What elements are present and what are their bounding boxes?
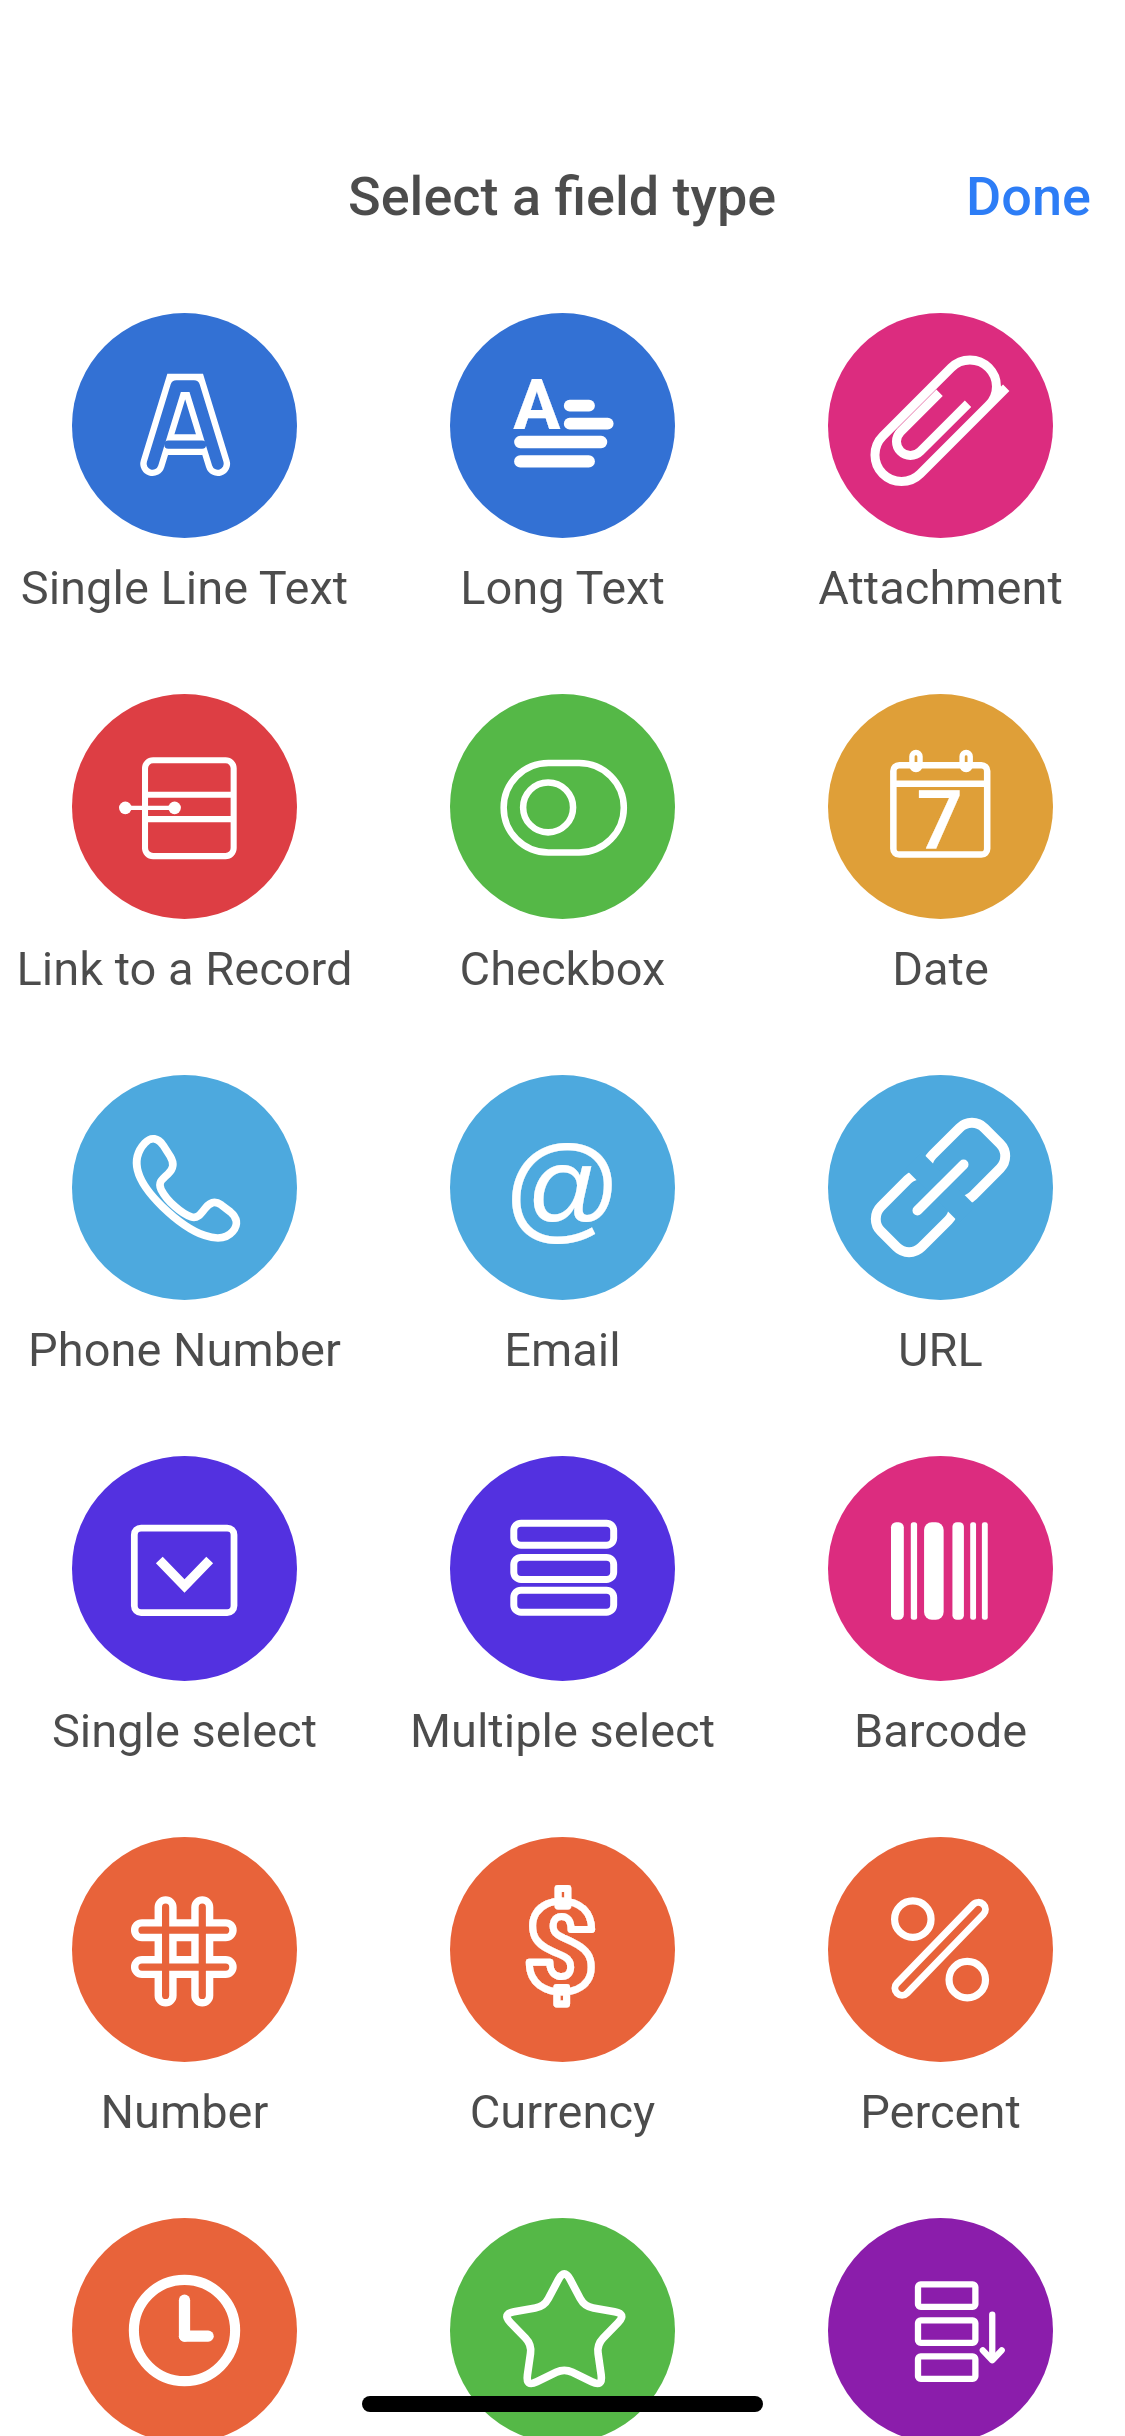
staticText: Long Text	[375, 560, 750, 615]
button[interactable]: Barcode	[753, 1444, 1125, 1754]
button[interactable]: Multiple select	[375, 1444, 750, 1754]
staticText: Email	[375, 1322, 750, 1377]
button[interactable]: URL	[753, 1063, 1125, 1373]
staticText: Phone Number	[0, 1322, 372, 1377]
staticText: Currency	[375, 2084, 750, 2139]
staticText: Barcode	[753, 1703, 1125, 1758]
staticText: Number	[0, 2084, 372, 2139]
button[interactable]: Number	[0, 1825, 372, 2135]
button[interactable]: Date	[753, 682, 1125, 992]
staticText: URL	[753, 1322, 1125, 1377]
button[interactable]: Link to a Record	[0, 682, 372, 992]
staticText: Single Line Text	[0, 560, 372, 615]
staticText: Attachment	[753, 560, 1125, 615]
button[interactable]: Email	[375, 1063, 750, 1373]
button[interactable]: Done	[928, 125, 1125, 285]
button[interactable]: Duration	[0, 2206, 372, 2436]
button[interactable]: Currency	[375, 1825, 750, 2135]
staticText: Date	[753, 941, 1125, 996]
staticText: Link to a Record	[0, 941, 372, 996]
button[interactable]: Long Text	[375, 301, 750, 611]
staticText: Done	[966, 165, 1091, 228]
staticText: Percent	[753, 2084, 1125, 2139]
staticText: Single select	[0, 1703, 372, 1758]
button[interactable]: Phone Number	[0, 1063, 372, 1373]
staticText: Checkbox	[375, 941, 750, 996]
button[interactable]: Auto Number	[753, 2206, 1125, 2436]
button[interactable]: Checkbox	[375, 682, 750, 992]
staticText: Select a field type	[348, 165, 777, 228]
staticText: Multiple select	[375, 1703, 750, 1758]
button[interactable]: Single select	[0, 1444, 372, 1754]
button[interactable]: Percent	[753, 1825, 1125, 2135]
button[interactable]: Rating	[375, 2206, 750, 2436]
button[interactable]: Attachment	[753, 301, 1125, 611]
button[interactable]: Single Line Text	[0, 301, 372, 611]
